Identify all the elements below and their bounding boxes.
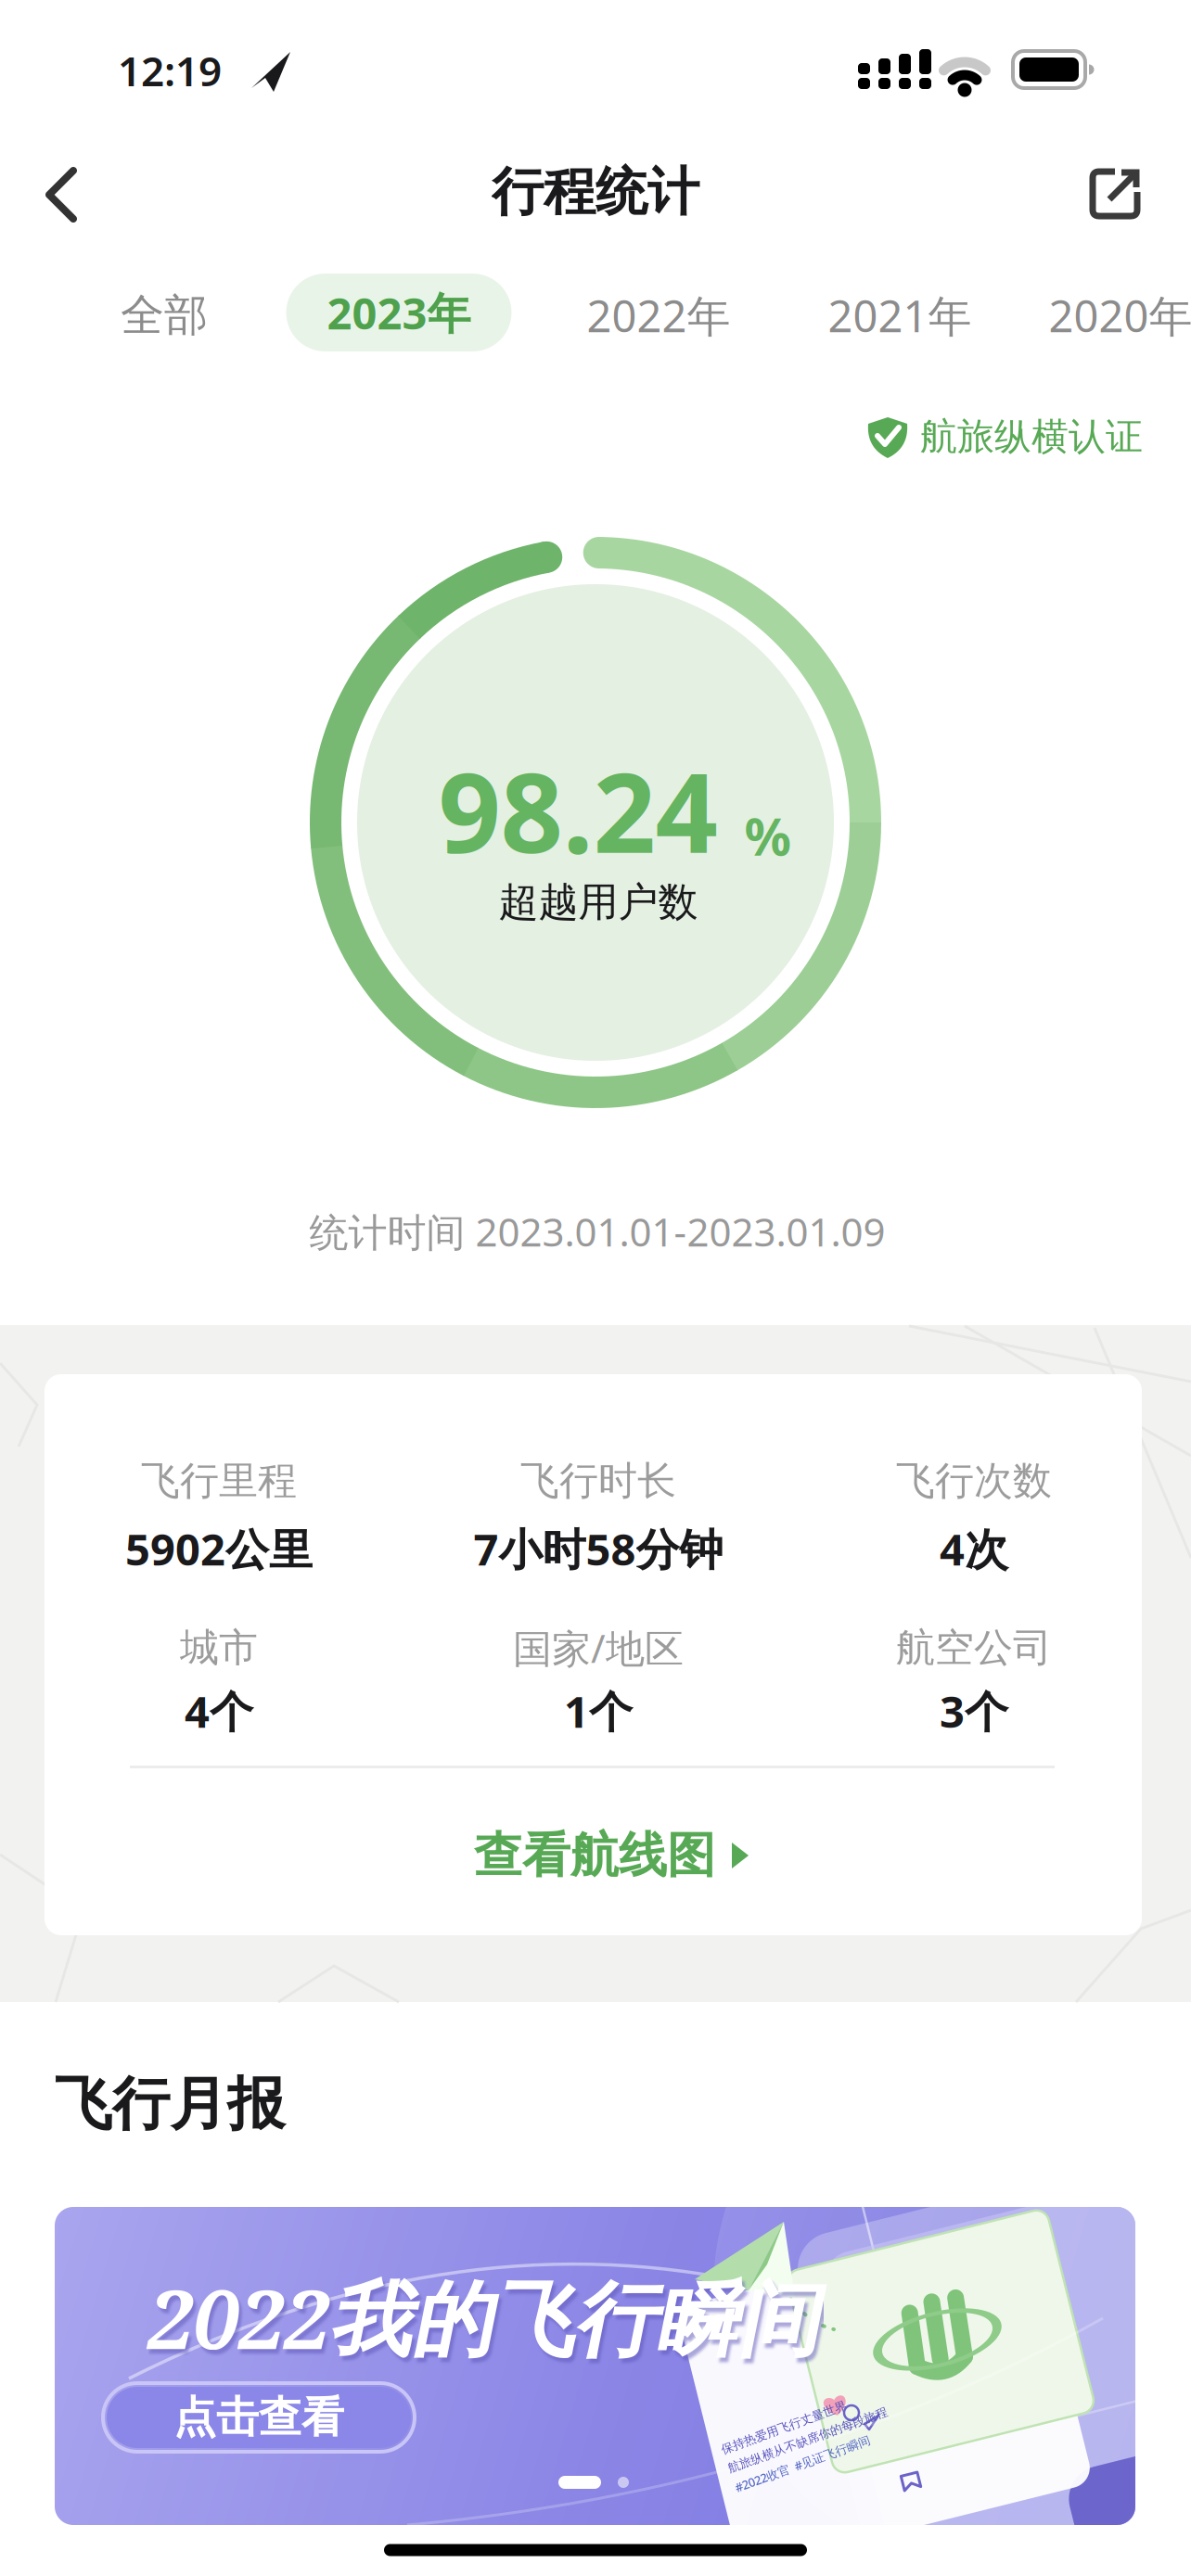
staticText: % xyxy=(744,800,792,871)
staticText: 飞行里程 xyxy=(141,1456,297,1505)
staticText: 飞行月报 xyxy=(55,2068,285,2140)
staticText: 2022年 xyxy=(587,286,730,345)
staticText: 7小时58分钟 xyxy=(474,1519,723,1578)
button[interactable]: Back xyxy=(47,168,77,222)
staticText: 3个 xyxy=(940,1681,1008,1741)
button[interactable]: 2020年 xyxy=(1049,286,1191,345)
staticText: 航空公司 xyxy=(896,1623,1052,1672)
staticText: 飞行次数 xyxy=(896,1456,1052,1505)
staticText: 查看航线图 xyxy=(474,1825,715,1886)
staticText: 2020年 xyxy=(1049,286,1191,345)
staticText: 保持热爱用飞行丈量世界 xyxy=(724,2413,856,2428)
button[interactable]: 2021年 xyxy=(828,286,972,345)
staticText: 飞行时长 xyxy=(520,1456,676,1505)
staticText: 城市 xyxy=(180,1623,258,1672)
staticText: 2022我的飞行瞬间 xyxy=(147,2262,819,2373)
staticText: 12:19 xyxy=(118,43,222,98)
button[interactable]: 2023年 xyxy=(286,274,512,351)
staticText: 全部 xyxy=(121,288,208,343)
staticText: 2023年 xyxy=(327,283,471,342)
button[interactable]: 2022我的飞行瞬间 点击查看 xyxy=(55,2207,1135,2525)
staticText: 航旅纵横认证 xyxy=(920,413,1143,460)
button[interactable]: 查看航线图 xyxy=(474,1825,750,1886)
staticText: 统计时间 2023.01.01-2023.01.09 xyxy=(309,1205,885,1258)
staticText: 行程统计 xyxy=(492,159,699,225)
staticText: 航旅纵横从不缺席你的每段旅程 xyxy=(724,2432,892,2448)
button[interactable]: Share xyxy=(1090,167,1142,219)
staticText: 点击查看 xyxy=(173,2391,344,2444)
staticText: #2022收官 #见证飞行瞬间 xyxy=(724,2452,866,2469)
button[interactable]: 2022年 xyxy=(587,286,730,345)
staticText: 4个 xyxy=(185,1681,253,1741)
staticText: 2021年 xyxy=(828,286,972,345)
staticText: 超越用户数 xyxy=(499,877,698,927)
staticText: 国家/地区 xyxy=(513,1621,684,1674)
staticText: 5902公里 xyxy=(125,1519,313,1578)
staticText: 1个 xyxy=(564,1681,633,1741)
staticText: 98.24 xyxy=(438,736,717,885)
button[interactable]: 全部 xyxy=(121,288,208,343)
staticText: 4次 xyxy=(940,1519,1008,1578)
